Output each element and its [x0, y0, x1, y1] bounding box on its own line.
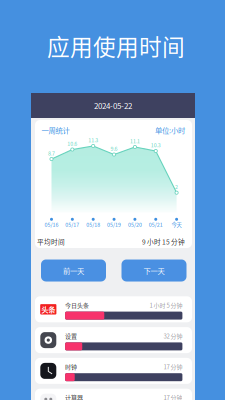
staticText: 2: [175, 183, 178, 190]
button[interactable]: 头条: [35, 296, 192, 322]
staticText: 11.3: [88, 136, 98, 144]
staticText: 05/18: [86, 221, 100, 228]
staticText: 平均时间: [37, 237, 65, 246]
button[interactable]: 计算器: [35, 389, 192, 400]
button[interactable]: 设置: [35, 327, 192, 353]
staticText: 9 小时 15 分钟: [142, 237, 185, 246]
staticText: 11.1: [130, 137, 140, 145]
staticText: 头条: [41, 304, 55, 315]
staticText: 10.6: [67, 140, 77, 147]
staticText: 05/16: [44, 221, 58, 228]
staticText: 一周统计: [41, 125, 69, 135]
staticText: 17 分钟: [163, 393, 182, 400]
staticText: 今日头条: [65, 301, 89, 309]
staticText: 前一天: [63, 265, 84, 276]
staticText: 2024-05-22: [94, 100, 132, 111]
staticText: 应用使用时间: [47, 29, 185, 62]
staticText: 9.6: [111, 145, 118, 152]
button[interactable]: 前一天: [41, 259, 106, 281]
staticText: 32 分钟: [163, 332, 182, 340]
staticText: 设置: [65, 332, 77, 340]
staticText: 05/17: [65, 221, 79, 228]
button[interactable]: 时钟: [35, 358, 192, 384]
button[interactable]: 下一天: [121, 259, 186, 281]
staticText: 时钟: [65, 362, 77, 371]
staticText: 10.3: [151, 141, 161, 149]
staticText: 今天: [172, 221, 182, 228]
staticText: 1 小时 5 分钟: [149, 301, 182, 309]
staticText: 05/21: [149, 221, 163, 228]
staticText: 05/20: [128, 221, 142, 228]
staticText: 8.7: [48, 149, 55, 157]
staticText: 计算器: [65, 393, 83, 400]
staticText: 单位:小时: [155, 125, 185, 135]
staticText: 05/19: [107, 221, 121, 228]
staticText: 下一天: [143, 265, 164, 276]
staticText: 17 分钟: [163, 362, 182, 371]
